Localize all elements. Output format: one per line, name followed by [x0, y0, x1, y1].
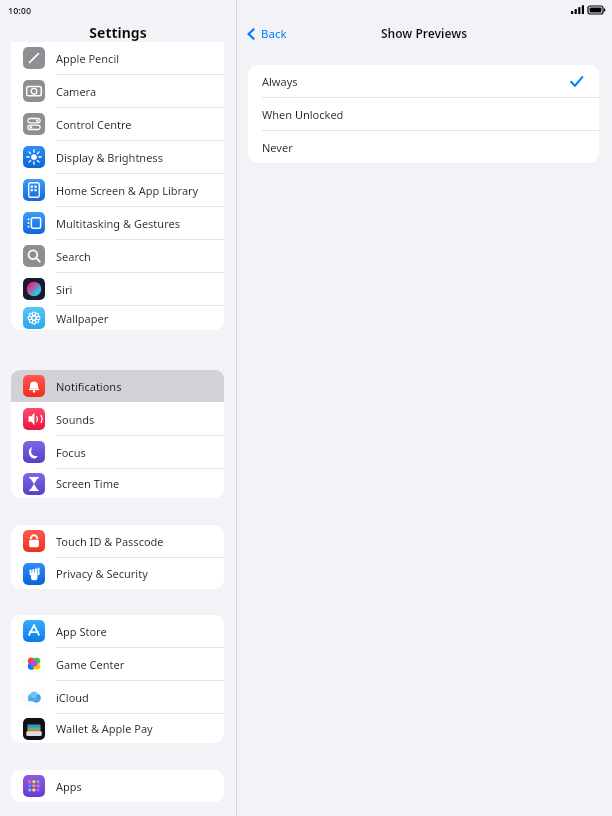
staticText: Control Centre: [56, 117, 132, 132]
staticText: Settings: [0, 23, 236, 42]
staticText: Display & Brightness: [56, 150, 163, 165]
button[interactable]: Notifications: [11, 370, 224, 402]
button[interactable]: Always: [248, 65, 599, 97]
staticText: Camera: [56, 84, 97, 99]
staticText: Apple Pencil: [56, 51, 120, 66]
staticText: App Store: [56, 624, 107, 639]
staticText: Always: [262, 74, 298, 89]
staticText: Focus: [56, 445, 86, 460]
staticText: When Unlocked: [262, 107, 344, 122]
button[interactable]: Camera: [11, 75, 224, 107]
staticText: Search: [56, 249, 91, 264]
staticText: Game Center: [56, 657, 125, 672]
button[interactable]: Back: [245, 23, 287, 45]
button[interactable]: Privacy & Security: [11, 558, 224, 589]
staticText: Wallpaper: [56, 311, 109, 326]
button[interactable]: Screen Time: [11, 469, 224, 498]
button[interactable]: Touch ID & Passcode: [11, 525, 224, 557]
button[interactable]: Apple Pencil: [11, 42, 224, 74]
staticText: Screen Time: [56, 476, 120, 491]
staticText: Wallet & Apple Pay: [56, 721, 153, 736]
staticText: Sounds: [56, 412, 95, 427]
staticText: Privacy & Security: [56, 566, 148, 581]
button[interactable]: Sounds: [11, 403, 224, 435]
staticText: Multitasking & Gestures: [56, 216, 180, 231]
staticText: Notifications: [56, 379, 122, 394]
button[interactable]: Siri: [11, 273, 224, 305]
staticText: Home Screen & App Library: [56, 183, 199, 198]
button[interactable]: Home Screen & App Library: [11, 174, 224, 206]
button[interactable]: App Store: [11, 615, 224, 647]
button[interactable]: Focus: [11, 436, 224, 468]
staticText: Show Previews: [236, 25, 612, 41]
button[interactable]: iCloud: [11, 681, 224, 713]
button[interactable]: Search: [11, 240, 224, 272]
button[interactable]: Display & Brightness: [11, 141, 224, 173]
staticText: Back: [261, 26, 287, 42]
button[interactable]: When Unlocked: [248, 98, 599, 130]
staticText: Apps: [56, 779, 82, 794]
staticText: Siri: [56, 282, 73, 297]
staticText: iCloud: [56, 690, 89, 705]
button[interactable]: Wallpaper: [11, 306, 224, 330]
staticText: Touch ID & Passcode: [56, 534, 164, 549]
button[interactable]: Control Centre: [11, 108, 224, 140]
staticText: 10:00: [8, 4, 32, 16]
button[interactable]: Never: [248, 131, 599, 163]
button[interactable]: Apps: [11, 770, 224, 802]
button[interactable]: Game Center: [11, 648, 224, 680]
staticText: Never: [262, 140, 293, 155]
button[interactable]: Wallet & Apple Pay: [11, 714, 224, 743]
button[interactable]: Multitasking & Gestures: [11, 207, 224, 239]
